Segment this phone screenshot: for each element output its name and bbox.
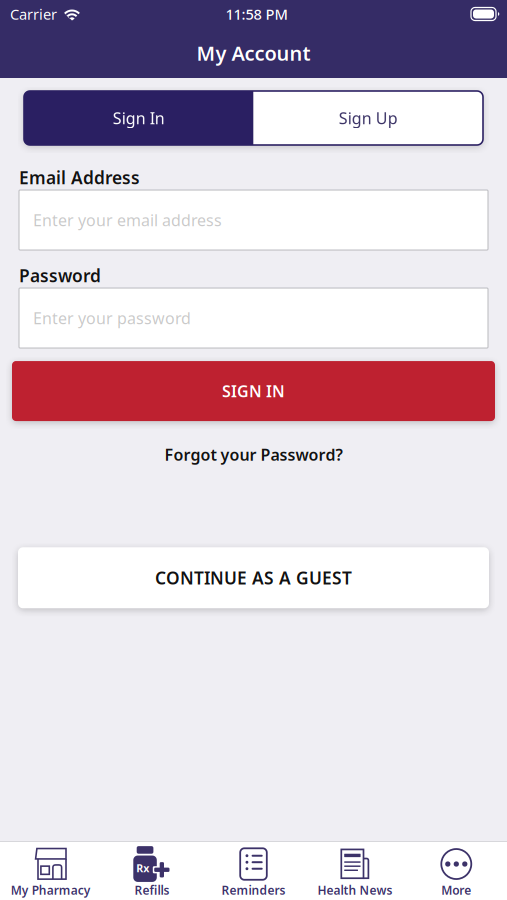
staticText: Sign In (113, 107, 165, 129)
button[interactable]: Reminders (203, 842, 304, 900)
staticText: Email Address (19, 166, 140, 189)
staticText: 11:58 PM (225, 4, 287, 24)
staticText: Enter your email address (33, 209, 222, 231)
button[interactable]: Sign In (24, 91, 253, 145)
staticText: More (441, 882, 471, 898)
staticText: Refills (135, 882, 170, 898)
button[interactable]: Rx (101, 842, 203, 900)
staticText: My Account (196, 40, 310, 66)
button[interactable]: Forgot your Password? (164, 421, 342, 475)
staticText: Rx (136, 861, 149, 875)
staticText: My Pharmacy (11, 882, 91, 898)
staticText: Forgot your Password? (164, 444, 342, 465)
staticText: Enter your password (33, 307, 191, 329)
staticText: Sign Up (339, 107, 398, 129)
button[interactable]: My Pharmacy (0, 842, 101, 900)
button[interactable]: SIGN IN (12, 361, 495, 421)
button[interactable]: More (406, 842, 507, 900)
button[interactable]: CONTINUE AS A GUEST (18, 547, 489, 608)
staticText: Health News (317, 882, 392, 898)
staticText: SIGN IN (222, 380, 285, 402)
staticText: Password (19, 264, 101, 287)
button[interactable]: Health News (304, 842, 406, 900)
staticText: CONTINUE AS A GUEST (155, 566, 352, 589)
button[interactable]: Enter your password (19, 288, 488, 348)
button[interactable]: Sign Up (253, 91, 483, 145)
staticText: Carrier (10, 4, 57, 24)
staticText: Reminders (221, 882, 285, 898)
button[interactable]: Enter your email address (19, 190, 488, 250)
